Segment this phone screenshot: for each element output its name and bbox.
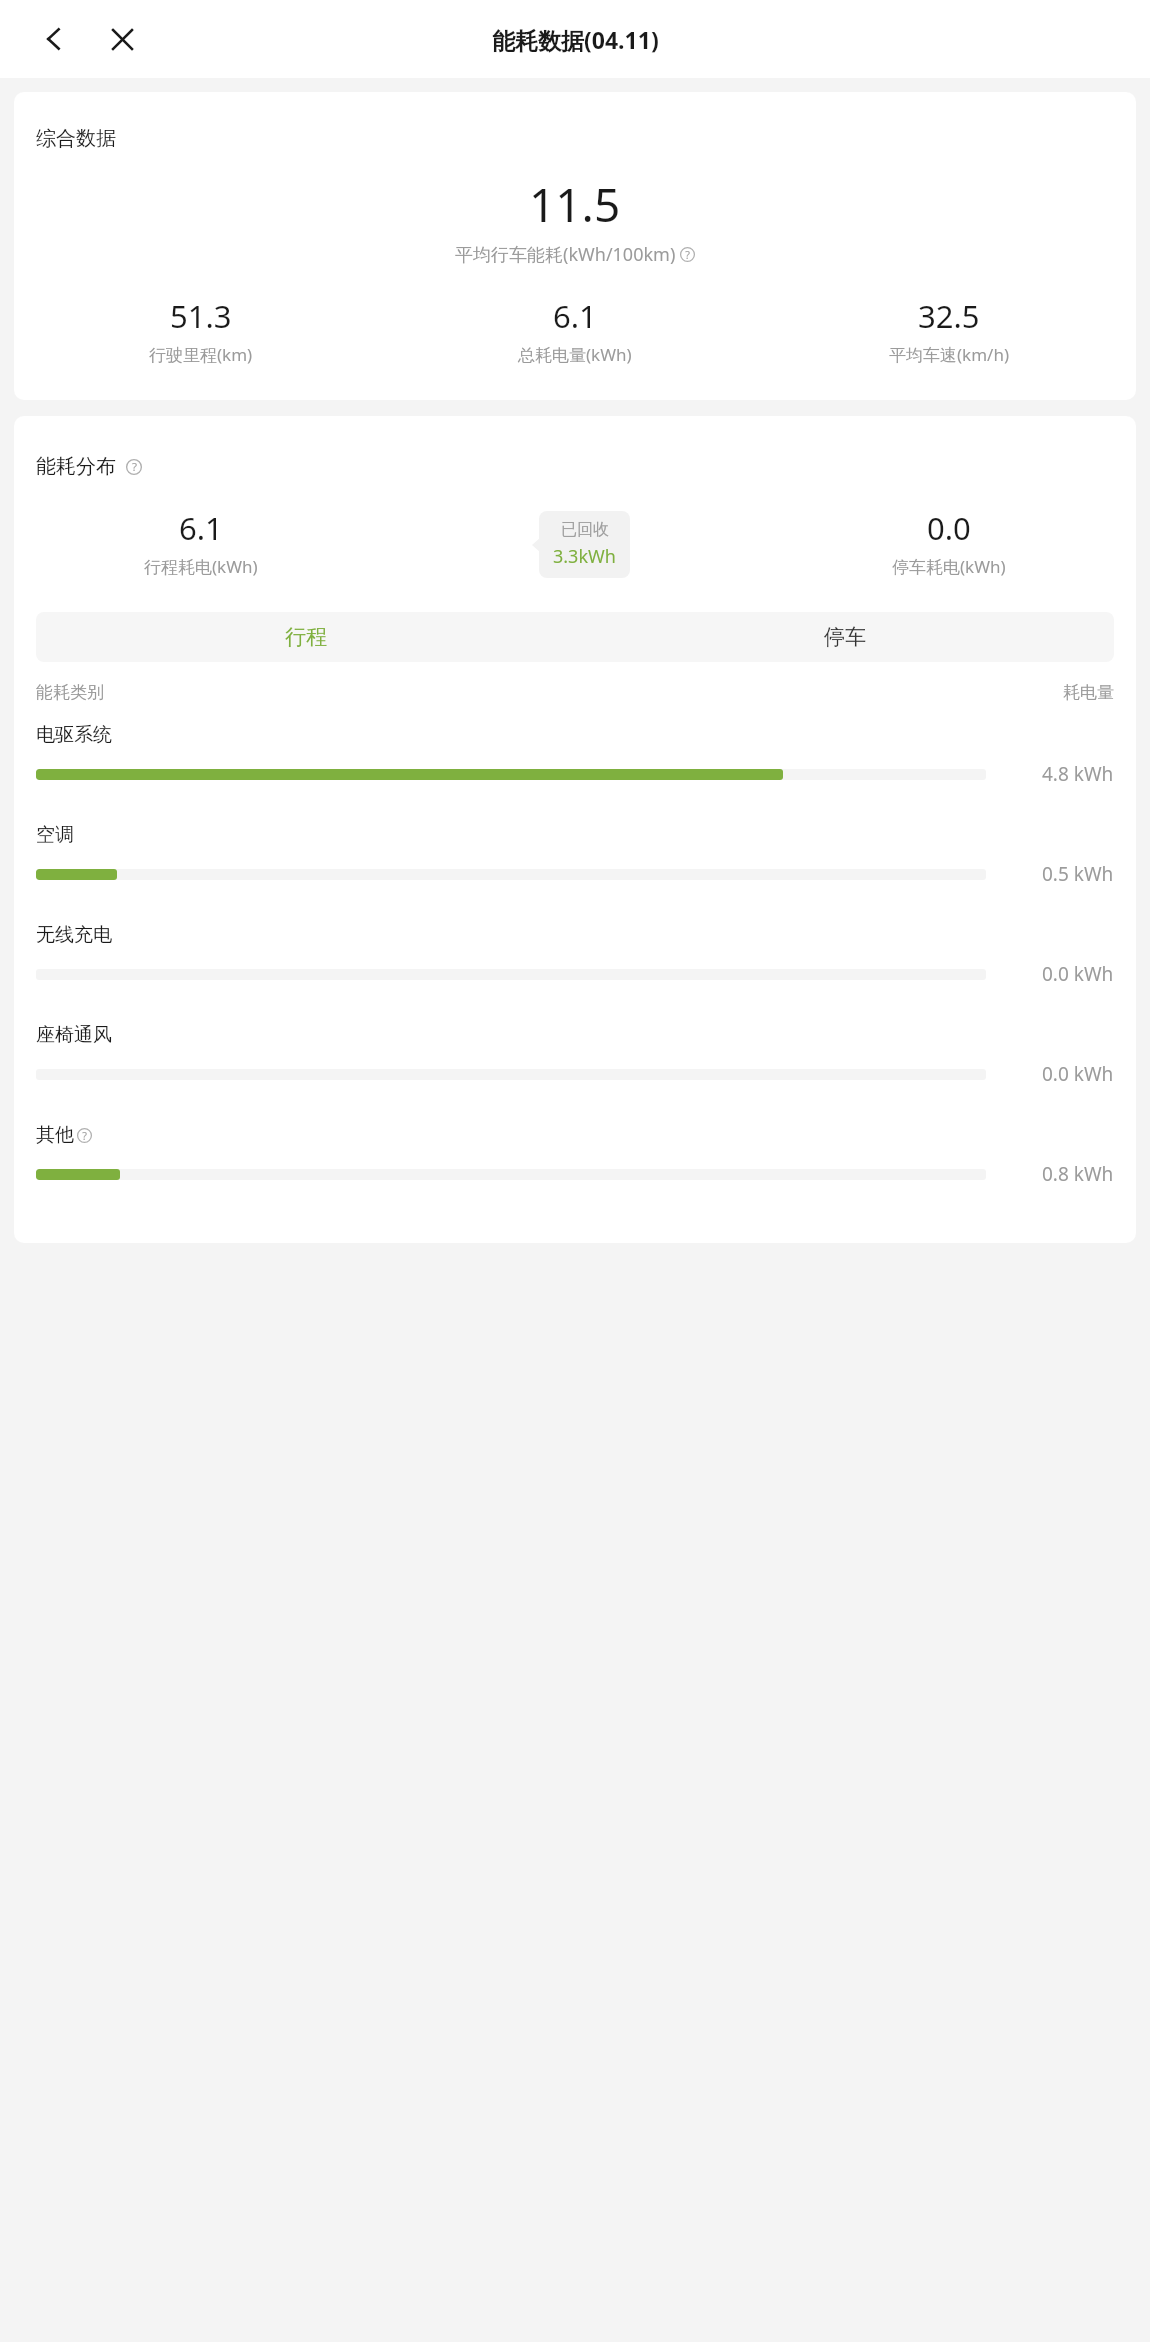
button[interactable]: 停车 xyxy=(575,612,1114,662)
staticText: 6.1 xyxy=(179,507,223,549)
staticText: 已回收 xyxy=(561,520,609,540)
button[interactable]: Back xyxy=(30,15,78,63)
staticText: 无线充电 xyxy=(36,923,112,947)
staticText: 耗电量 xyxy=(1063,682,1114,703)
staticText: ? xyxy=(132,459,137,475)
staticText: 能耗分布 xyxy=(36,454,116,479)
staticText: 座椅通风 xyxy=(36,1023,112,1047)
staticText: 总耗电量(kWh) xyxy=(518,343,632,366)
staticText: 11.5 xyxy=(529,173,621,236)
staticText: 能耗数据(04.11) xyxy=(492,24,659,55)
staticText: 电驱系统 xyxy=(36,723,112,747)
button[interactable]: 已回收 xyxy=(539,511,630,578)
staticText: 0.0 kWh xyxy=(1042,961,1114,987)
button[interactable]: 座椅通风 xyxy=(14,1023,1136,1123)
staticText: 其他 xyxy=(36,1123,74,1147)
staticText: 4.8 kWh xyxy=(1042,761,1114,787)
staticText: 行驶里程(km) xyxy=(149,343,253,366)
staticText: 停车 xyxy=(824,624,866,650)
staticText: 能耗类别 xyxy=(36,682,104,703)
staticText: 3.3kWh xyxy=(553,544,616,569)
staticText: 平均行车能耗(kWh/100km) xyxy=(455,242,676,267)
button[interactable]: Close xyxy=(98,15,146,63)
button[interactable]: 电驱系统 xyxy=(14,723,1136,823)
staticText: 6.1 xyxy=(553,295,597,337)
staticText: 0.0 kWh xyxy=(1042,1061,1114,1087)
staticText: 行程耗电(kWh) xyxy=(144,555,258,578)
staticText: ? xyxy=(685,247,690,262)
staticText: 0.0 xyxy=(927,507,971,549)
button[interactable]: 其他 xyxy=(14,1123,1136,1223)
staticText: 0.5 kWh xyxy=(1042,861,1114,887)
staticText: 空调 xyxy=(36,823,74,847)
staticText: 行程 xyxy=(285,624,327,650)
staticText: ? xyxy=(82,1128,87,1143)
staticText: 51.3 xyxy=(170,295,232,337)
button[interactable]: 空调 xyxy=(14,823,1136,923)
staticText: 综合数据 xyxy=(36,126,116,151)
staticText: 0.8 kWh xyxy=(1042,1161,1114,1187)
staticText: 32.5 xyxy=(918,295,980,337)
button[interactable]: 行程 xyxy=(36,612,575,662)
staticText: 停车耗电(kWh) xyxy=(892,555,1006,578)
staticText: 平均车速(km/h) xyxy=(889,343,1010,366)
button[interactable]: 无线充电 xyxy=(14,923,1136,1023)
